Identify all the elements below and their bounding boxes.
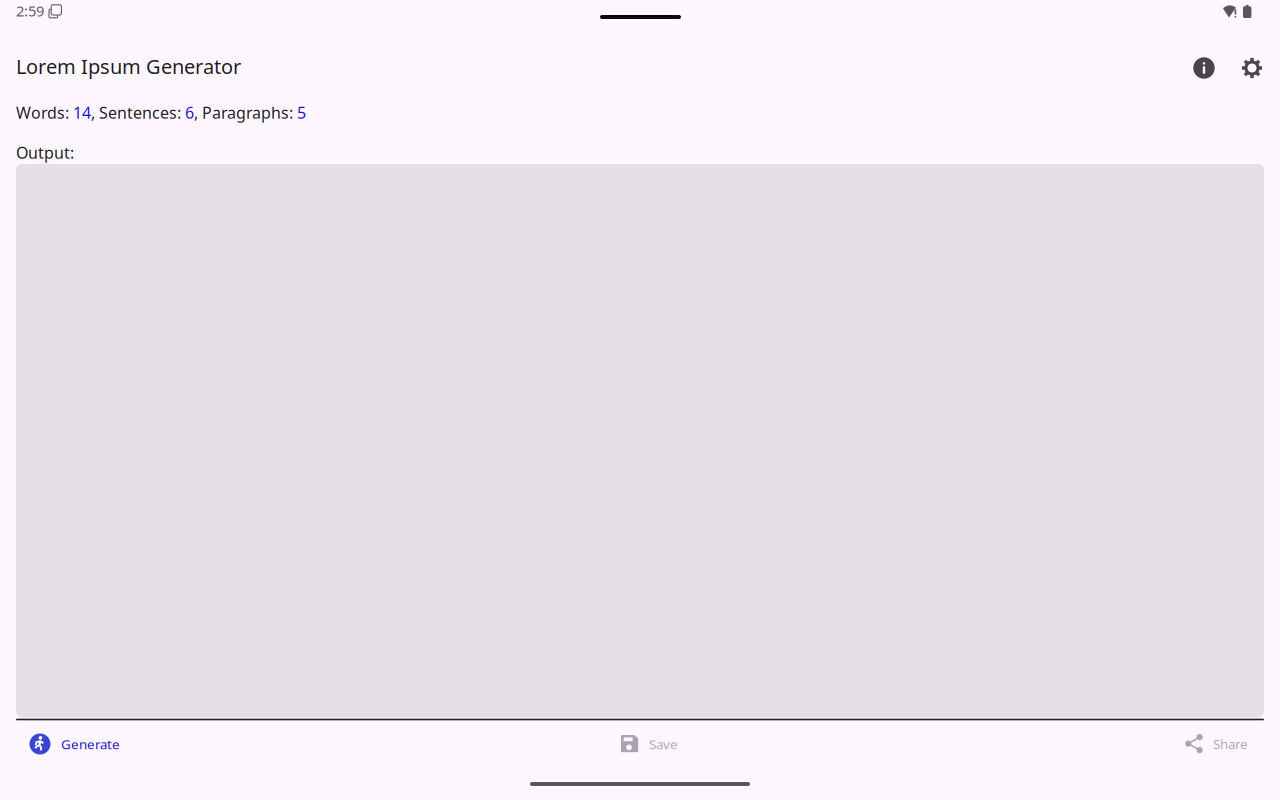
staticText: , Sentences:: [91, 102, 185, 123]
button[interactable]: Save: [609, 725, 690, 763]
staticText: 14: [73, 102, 91, 123]
staticText: 6: [185, 102, 194, 123]
staticText: 5: [297, 102, 306, 123]
staticText: Lorem Ipsum Generator: [16, 53, 241, 80]
staticText: Output:: [16, 142, 74, 163]
staticText: Save: [649, 735, 678, 753]
button[interactable]: Generate: [17, 723, 132, 765]
staticText: , Paragraphs:: [194, 102, 297, 123]
staticText: 2:59: [16, 1, 44, 20]
staticText: Generate: [61, 735, 120, 753]
staticText: Words:: [16, 102, 73, 123]
button[interactable]: Settings: [1239, 55, 1265, 81]
button[interactable]: Info: [1191, 55, 1217, 81]
staticText: Share: [1213, 735, 1248, 753]
button[interactable]: Share: [1173, 724, 1260, 763]
